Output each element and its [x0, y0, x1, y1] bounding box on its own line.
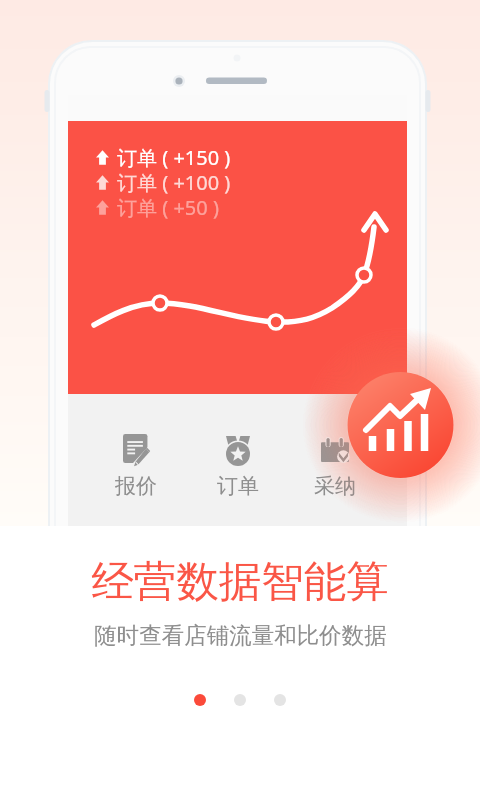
- staticText: 采纳: [314, 473, 356, 499]
- button[interactable]: Page: [274, 694, 286, 706]
- button[interactable]: 报价: [94, 428, 178, 500]
- staticText: 订单: [217, 473, 259, 499]
- staticText: 报价: [115, 473, 157, 499]
- button[interactable]: Page: [234, 694, 246, 706]
- staticText: 订单 ( +100 ): [117, 169, 231, 196]
- button[interactable]: 采纳: [293, 428, 377, 500]
- staticText: 随时查看店铺流量和比价数据: [94, 621, 387, 649]
- staticText: 经营数据智能算: [91, 555, 389, 609]
- button[interactable]: Analytics: [347, 372, 453, 478]
- button[interactable]: 订单: [196, 428, 280, 500]
- staticText: 订单 ( +50 ): [117, 194, 219, 221]
- staticText: 订单 ( +150 ): [117, 144, 231, 171]
- button[interactable]: Page 1: [194, 694, 206, 706]
